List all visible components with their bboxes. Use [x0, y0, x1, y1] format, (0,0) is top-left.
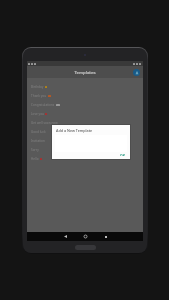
button[interactable]: Hello [31, 154, 143, 163]
staticText: Love you [31, 112, 44, 116]
staticText: Invitation [31, 139, 45, 143]
staticText: Sorry [31, 148, 39, 152]
button[interactable]: Home [81, 232, 90, 241]
staticText: Templates [74, 69, 96, 75]
staticText: Add a New Template [56, 128, 93, 133]
button[interactable]: Back [61, 232, 70, 241]
staticText: Good luck [31, 130, 46, 134]
button[interactable]: Sorry [31, 145, 143, 154]
button[interactable]: Good luck [31, 127, 143, 136]
staticText: Hello [31, 157, 39, 161]
button[interactable]: Birthday [31, 82, 143, 91]
staticText: Congratulations [31, 103, 55, 107]
button[interactable]: Recents [101, 232, 110, 241]
button[interactable]: Thank you [31, 91, 143, 100]
staticText: OK [120, 153, 125, 156]
staticText: Thank you [31, 94, 47, 98]
button[interactable]: Congratulations [31, 100, 143, 109]
button[interactable]: Account [133, 69, 140, 76]
button[interactable]: Invitation [31, 136, 143, 145]
button[interactable]: OK [119, 152, 126, 157]
staticText: Get well soon now [31, 121, 58, 125]
button[interactable]: Get well soon now [31, 118, 143, 127]
button[interactable]: Love you [31, 109, 143, 118]
staticText: Birthday [31, 85, 44, 89]
